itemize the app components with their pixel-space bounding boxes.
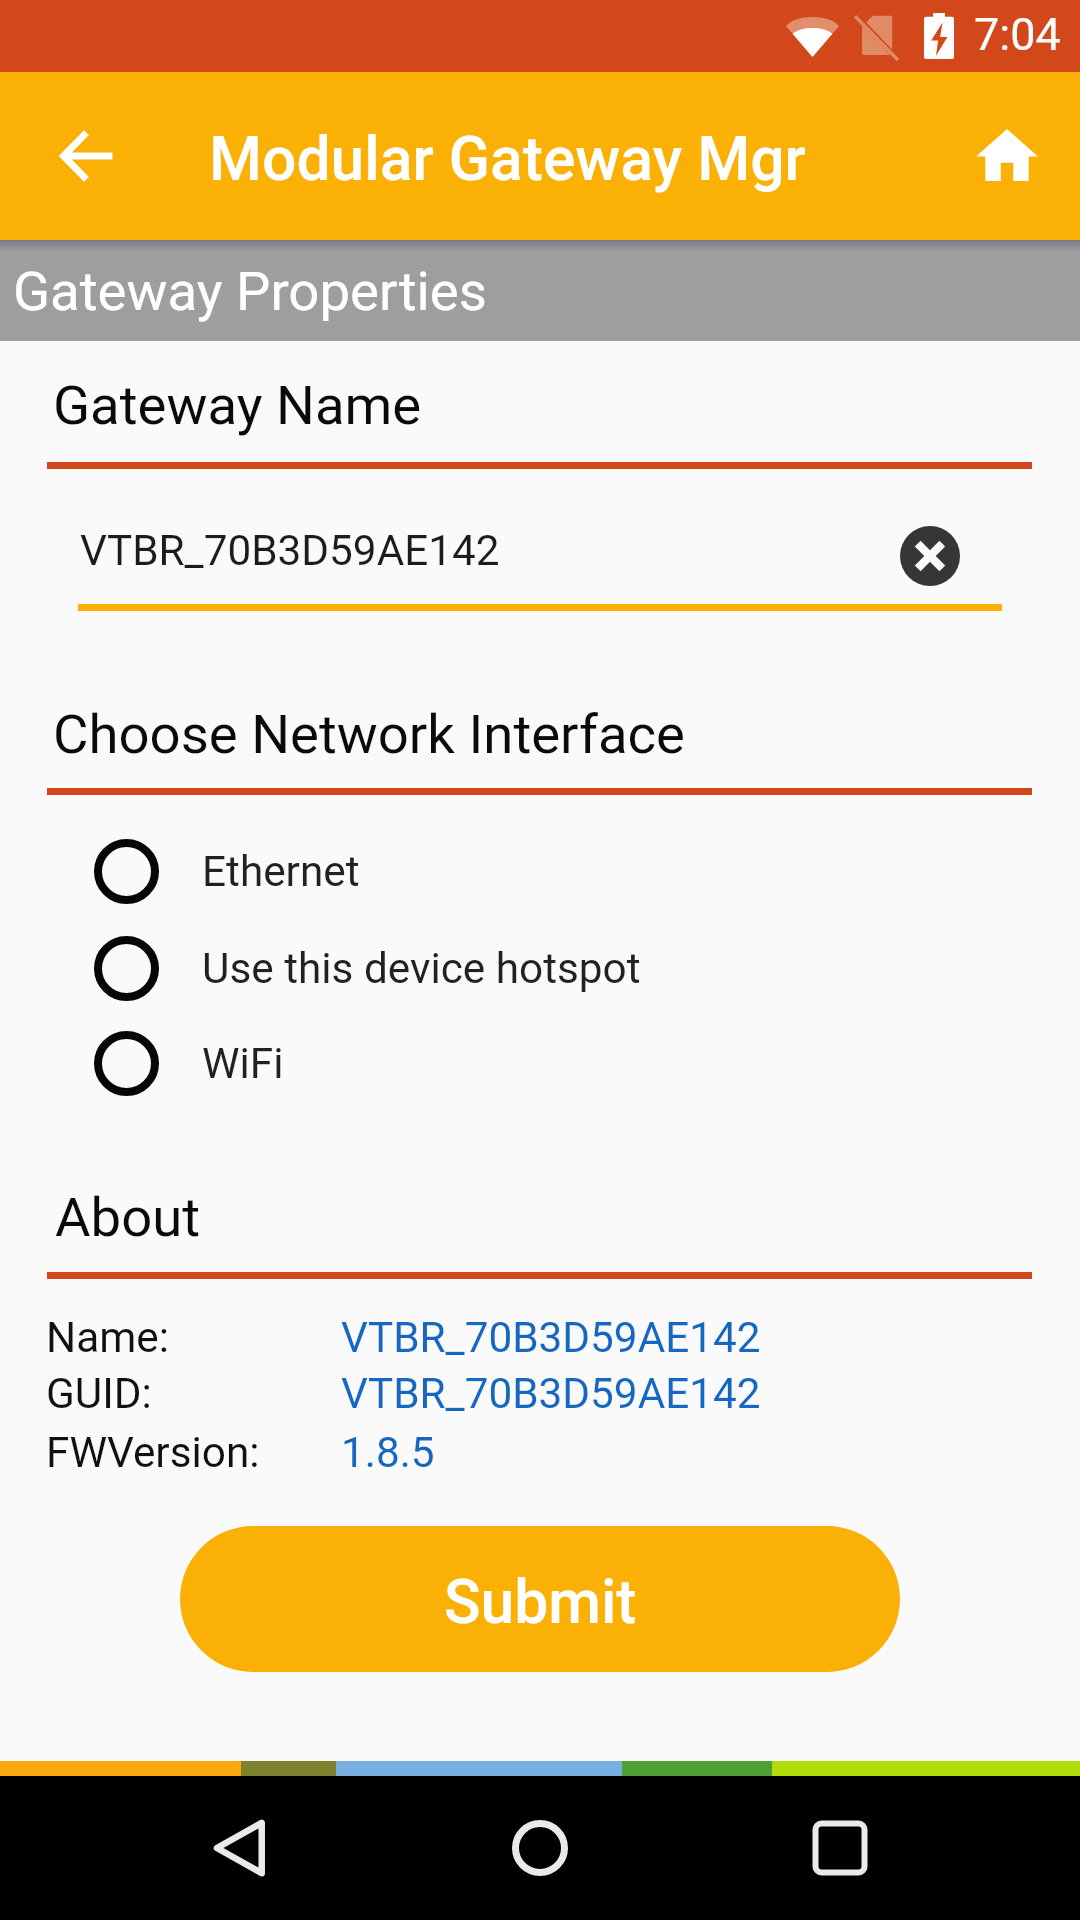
staticText: Choose Network Interface [53,702,685,766]
button[interactable]: Ethernet [70,823,1032,920]
staticText: 1.8.5 [341,1428,435,1478]
button[interactable]: Navigate up [40,108,136,204]
staticText: Name: [46,1313,169,1363]
button[interactable]: Use this device hotspot [70,920,1032,1017]
staticText: Gateway Properties [13,259,487,323]
button[interactable]: Recent apps [787,1795,893,1901]
button[interactable]: Home [487,1795,593,1901]
staticText: GUID: [46,1369,152,1419]
staticText: 7:04 [974,8,1061,61]
button[interactable]: Clear text [900,526,960,586]
button[interactable]: Back [188,1795,294,1901]
staticText: Ethernet [202,847,360,897]
staticText: VTBR_70B3D59AE142 [341,1313,761,1363]
staticText: Use this device hotspot [202,944,641,994]
staticText: Gateway Name [53,373,422,437]
button[interactable]: Home [960,108,1056,204]
button[interactable]: WiFi [70,1015,1032,1112]
staticText: WiFi [202,1039,284,1089]
staticText: Submit [444,1567,637,1638]
staticText: About [55,1185,201,1249]
button[interactable]: Submit [180,1526,900,1672]
staticText: VTBR_70B3D59AE142 [341,1369,761,1419]
staticText: FWVersion: [46,1428,260,1478]
staticText: Modular Gateway Mgr [209,124,806,195]
staticText: VTBR_70B3D59AE142 [80,526,500,576]
